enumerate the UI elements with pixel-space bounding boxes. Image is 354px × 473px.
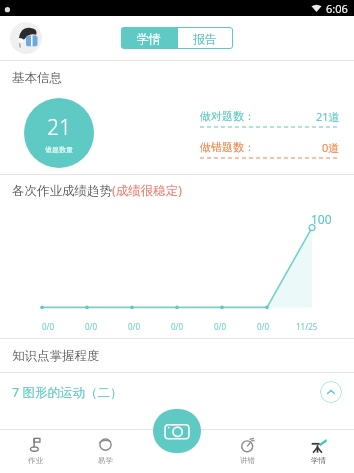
staticText: 做错题数： [200,140,255,154]
staticText: 各次作业成绩趋势 [12,183,112,199]
staticText: 11/25 [296,321,318,332]
staticText: 21 [47,113,71,142]
staticText: 21道 [316,109,340,124]
button[interactable]: 7 图形的运动（二） [0,373,354,411]
button[interactable]: 讲错 [212,429,283,473]
staticText: 100 [311,211,332,227]
staticText: 学情 [311,456,326,465]
staticText: 做对题数： [200,109,255,123]
staticText: 0/0 [257,321,270,332]
staticText: 易学 [98,456,113,465]
staticText: 0道 [322,140,340,155]
button[interactable]: 作业 [0,429,70,473]
staticText: 7 图形的运动（二） [12,384,123,401]
button[interactable]: 报告 [177,27,233,49]
staticText: 报告 [193,31,217,46]
other: Collapse [320,381,342,403]
staticText: 讲错 [240,456,255,465]
button[interactable]: Profile avatar [10,22,42,54]
button[interactable]: Camera [153,409,201,453]
staticText: 0/0 [214,321,227,332]
staticText: 6:06 [326,1,348,16]
button[interactable]: 学情 [283,429,354,473]
staticText: (成绩很稳定) [112,182,183,199]
staticText: 基本信息 [12,70,62,86]
button[interactable]: 易学 [70,429,141,473]
staticText: 做题数量 [45,145,73,154]
staticText: 作业 [28,456,43,465]
staticText: 0/0 [42,321,55,332]
staticText: 知识点掌握程度 [12,348,100,364]
button[interactable]: 学情 [121,27,177,49]
staticText: 学情 [137,31,161,46]
staticText: 0/0 [85,321,98,332]
staticText: 0/0 [128,321,141,332]
staticText: 0/0 [171,321,184,332]
